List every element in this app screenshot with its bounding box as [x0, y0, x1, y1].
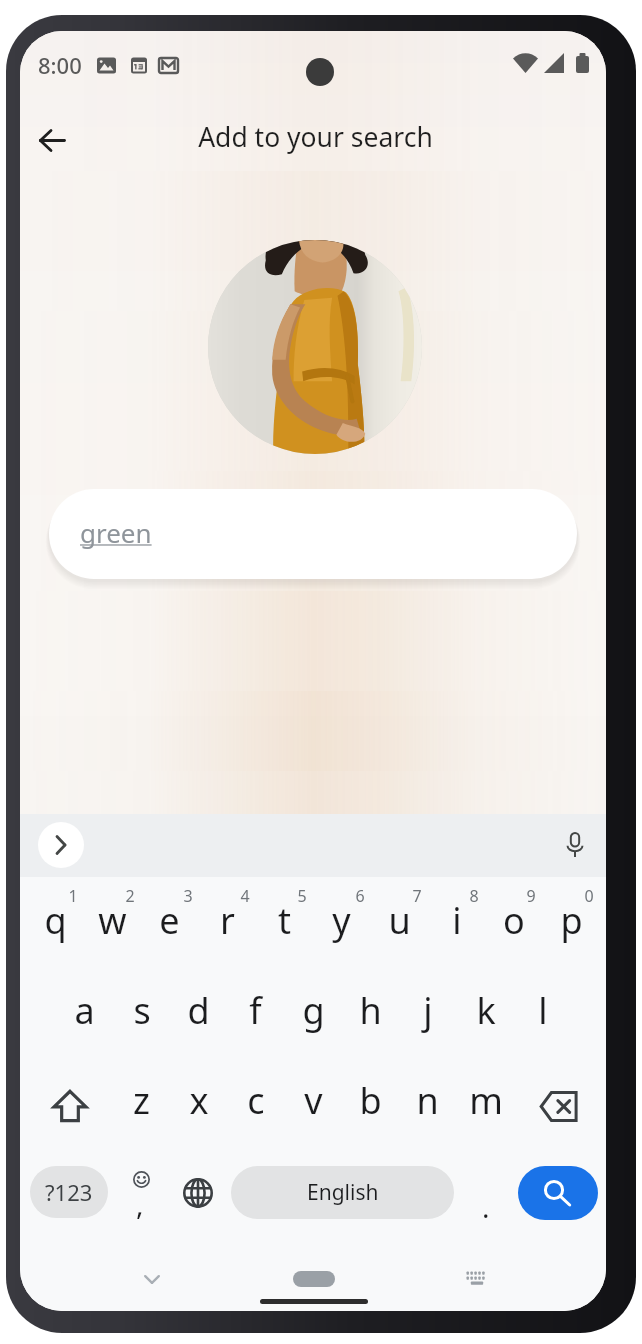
button[interactable]: Shift: [27, 1061, 112, 1151]
staticText: g: [302, 986, 325, 1035]
staticText: 0: [584, 885, 594, 907]
button[interactable]: Resize keyboard: [293, 1271, 335, 1287]
staticText: p: [560, 896, 583, 945]
staticText: ,: [136, 1185, 144, 1223]
staticText: u: [388, 896, 411, 945]
staticText: v: [304, 1076, 323, 1125]
button[interactable]: Voice input: [552, 822, 598, 868]
staticText: 2: [125, 885, 135, 907]
button[interactable]: ?123: [30, 1166, 108, 1218]
staticText: green: [80, 515, 152, 550]
button[interactable]: [285, 967, 342, 1057]
staticText: 8:00: [38, 50, 82, 80]
button[interactable]: Change keyboard language: [170, 1165, 226, 1221]
staticText: w: [98, 896, 127, 945]
button[interactable]: [285, 1057, 342, 1147]
staticText: 5: [297, 885, 307, 907]
staticText: h: [359, 986, 382, 1035]
button[interactable]: Show suggestions: [38, 822, 84, 868]
button[interactable]: green: [49, 489, 577, 579]
button[interactable]: [342, 967, 399, 1057]
staticText: l: [538, 986, 548, 1035]
button[interactable]: Hide keyboard: [124, 1252, 179, 1306]
staticText: 4: [240, 885, 250, 907]
staticText: 3: [183, 885, 193, 907]
button[interactable]: [543, 877, 600, 967]
button[interactable]: [457, 1057, 514, 1147]
button[interactable]: [199, 877, 256, 967]
button[interactable]: English: [231, 1166, 454, 1219]
staticText: q: [44, 896, 67, 945]
staticText: o: [503, 896, 525, 945]
staticText: c: [247, 1076, 265, 1125]
button[interactable]: [56, 967, 113, 1057]
button[interactable]: [170, 967, 227, 1057]
staticText: 8: [469, 885, 479, 907]
button[interactable]: [84, 877, 141, 967]
staticText: 7: [412, 885, 422, 907]
staticText: e: [159, 896, 180, 945]
staticText: ?123: [45, 1177, 93, 1207]
button[interactable]: Emoji: [112, 1160, 169, 1222]
staticText: j: [423, 986, 433, 1035]
staticText: m: [469, 1076, 503, 1125]
staticText: n: [416, 1076, 439, 1125]
button[interactable]: [399, 967, 456, 1057]
staticText: y: [332, 896, 351, 945]
button[interactable]: [371, 877, 428, 967]
staticText: d: [187, 986, 210, 1035]
button[interactable]: [113, 967, 170, 1057]
staticText: English: [307, 1178, 379, 1207]
staticText: .: [482, 1188, 490, 1226]
button[interactable]: [113, 1057, 170, 1147]
button[interactable]: [227, 967, 284, 1057]
button[interactable]: [428, 877, 485, 967]
staticText: x: [189, 1076, 209, 1125]
button[interactable]: [399, 1057, 456, 1147]
button[interactable]: [485, 877, 542, 967]
button[interactable]: [313, 877, 370, 967]
button[interactable]: Back: [21, 109, 83, 171]
button[interactable]: [170, 1057, 227, 1147]
staticText: z: [133, 1076, 150, 1125]
staticText: k: [476, 986, 496, 1035]
button[interactable]: [227, 1057, 284, 1147]
button[interactable]: [457, 967, 514, 1057]
staticText: 1: [68, 885, 78, 907]
staticText: t: [278, 896, 291, 945]
staticText: i: [452, 896, 462, 945]
button[interactable]: [27, 877, 84, 967]
button[interactable]: [141, 877, 198, 967]
staticText: b: [359, 1076, 382, 1125]
button[interactable]: [514, 967, 571, 1057]
button[interactable]: Switch keyboard: [449, 1252, 504, 1306]
staticText: s: [133, 986, 151, 1035]
staticText: 6: [355, 885, 365, 907]
button[interactable]: [342, 1057, 399, 1147]
staticText: 9: [526, 885, 536, 907]
button[interactable]: Backspace: [516, 1061, 601, 1151]
button[interactable]: Search: [518, 1166, 598, 1220]
staticText: a: [74, 986, 95, 1035]
button[interactable]: [256, 877, 313, 967]
staticText: r: [220, 896, 235, 945]
staticText: Add to your search: [198, 119, 433, 155]
button[interactable]: .: [459, 1166, 511, 1219]
staticText: f: [249, 986, 262, 1035]
